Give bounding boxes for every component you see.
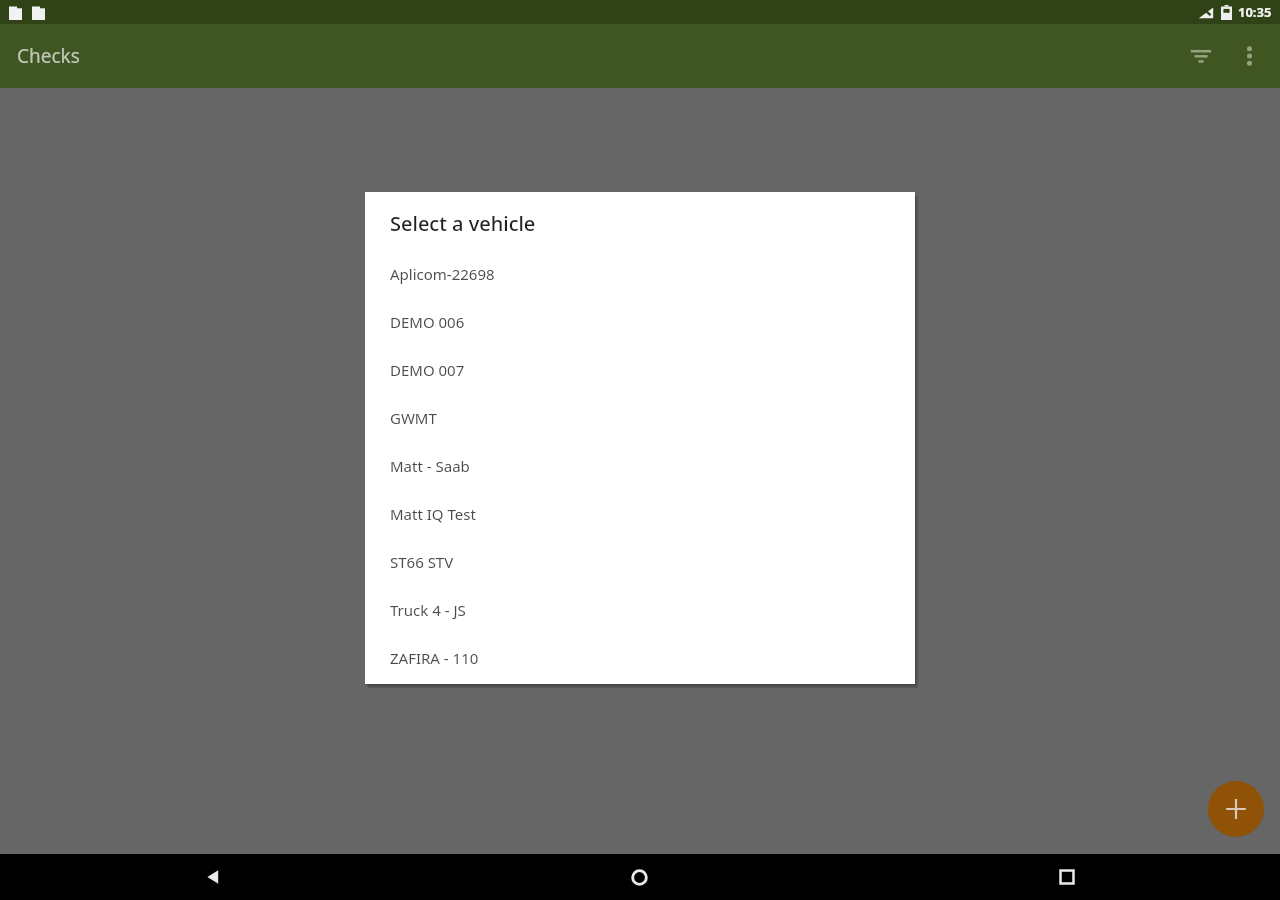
button[interactable]: Matt - Saab — [365, 442, 915, 490]
staticText: ZAFIRA - 110 — [390, 648, 479, 668]
button[interactable]: DEMO 007 — [365, 346, 915, 394]
button[interactable]: Add — [1208, 781, 1264, 837]
staticText: Select a vehicle — [390, 210, 536, 237]
button[interactable]: Filter — [1177, 32, 1225, 80]
staticText: Checks — [17, 43, 80, 69]
button[interactable]: More options — [1225, 32, 1273, 80]
button[interactable]: Matt IQ Test — [365, 490, 915, 538]
staticText: Aplicom-22698 — [390, 264, 495, 284]
button[interactable]: DEMO 006 — [365, 298, 915, 346]
button[interactable]: Recent apps — [853, 854, 1280, 900]
staticText: DEMO 007 — [390, 360, 465, 380]
button[interactable]: Aplicom-22698 — [365, 250, 915, 298]
staticText: Truck 4 - JS — [390, 600, 466, 620]
button[interactable]: ST66 STV — [365, 538, 915, 586]
button[interactable]: ZAFIRA - 110 — [365, 634, 915, 682]
staticText: Matt IQ Test — [390, 504, 476, 524]
button[interactable]: Truck 4 - JS — [365, 586, 915, 634]
staticText: Matt - Saab — [390, 456, 470, 476]
staticText: GWMT — [390, 408, 437, 428]
button[interactable]: Home — [426, 854, 853, 900]
staticText: ST66 STV — [390, 552, 454, 572]
button[interactable]: Back — [0, 854, 426, 900]
staticText: 10:35 — [1238, 3, 1272, 21]
staticText: DEMO 006 — [390, 312, 465, 332]
button[interactable]: GWMT — [365, 394, 915, 442]
